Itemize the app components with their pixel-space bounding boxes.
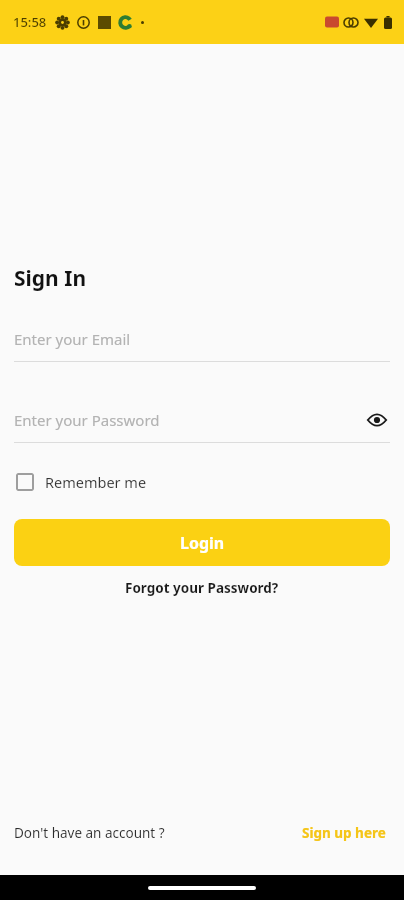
button[interactable]: Login bbox=[14, 519, 390, 566]
staticText: Enter your Email bbox=[14, 329, 390, 349]
button[interactable]: Enter your Email bbox=[14, 326, 390, 352]
button[interactable]: Enter your Password bbox=[14, 407, 390, 433]
staticText: 15:58 bbox=[13, 13, 47, 31]
button[interactable]: Show password bbox=[364, 407, 390, 433]
button[interactable]: Sign up here bbox=[298, 821, 390, 845]
staticText: Remember me bbox=[45, 472, 147, 492]
staticText: Enter your Password bbox=[14, 410, 364, 430]
button[interactable]: Forgot your Password? bbox=[117, 576, 287, 600]
staticText: Login bbox=[180, 532, 225, 554]
staticText: Don't have an account ? bbox=[14, 824, 165, 842]
staticText: Sign In bbox=[14, 264, 87, 293]
button[interactable]: Remember me bbox=[14, 468, 149, 496]
